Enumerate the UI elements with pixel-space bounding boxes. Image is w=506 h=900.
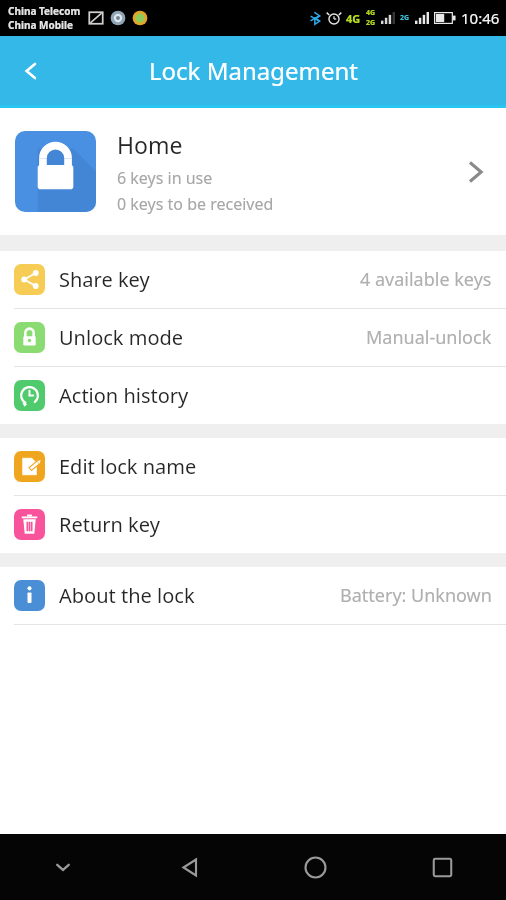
button[interactable]: Action history [0,367,506,424]
staticText: 6 keys in use [117,167,213,189]
button[interactable]: Share key [0,251,506,308]
button[interactable]: Home [0,108,506,235]
staticText: Unlock mode [59,324,184,351]
staticText: 4G [346,11,361,26]
button[interactable]: Back [0,36,62,105]
button[interactable]: Unlock mode [0,309,506,366]
button[interactable]: Edit lock name [0,438,506,495]
button[interactable]: About the lock [0,567,506,624]
staticText: 2G [366,18,376,28]
button[interactable]: Home [252,834,379,900]
staticText: 10:46 [461,8,500,28]
staticText: Return key [59,511,160,538]
staticText: Action history [59,382,189,409]
staticText: Home [117,129,183,160]
staticText: Battery: Unknown [340,583,492,608]
staticText: About the lock [59,582,195,609]
staticText: Manual-unlock [366,325,492,350]
staticText: China Telecom [8,4,81,18]
button[interactable]: Back [126,834,252,900]
staticText: 2G [400,13,410,23]
staticText: 4 available keys [360,267,492,292]
button[interactable]: Hide keyboard [0,834,126,900]
staticText: 0 keys to be received [117,193,274,215]
staticText: Share key [59,266,150,293]
button[interactable]: Recent apps [379,834,506,900]
staticText: 4G [366,8,376,18]
staticText: Lock Management [149,54,358,87]
staticText: Edit lock name [59,453,197,480]
button[interactable]: Return key [0,496,506,553]
staticText: China Mobile [8,18,73,32]
